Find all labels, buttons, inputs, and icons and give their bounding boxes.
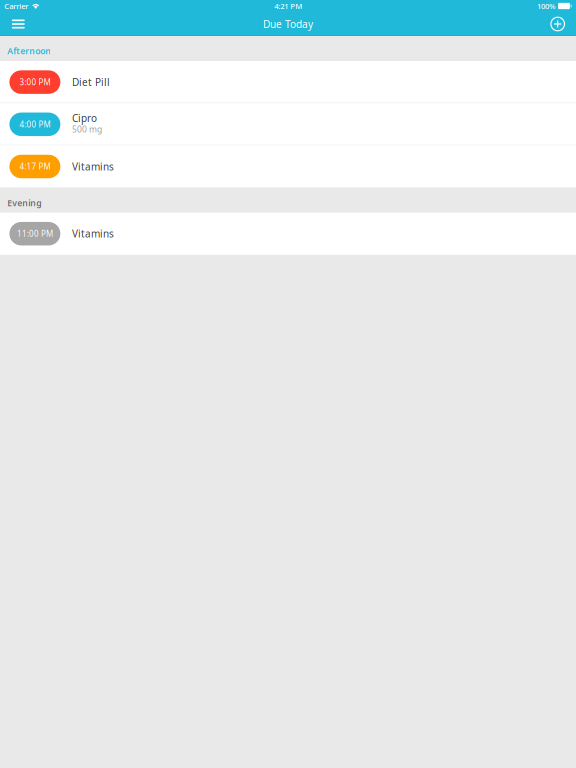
staticText: 11:00 PM (17, 228, 53, 239)
staticText: 3:00 PM (19, 77, 50, 88)
staticText: 4:00 PM (19, 119, 50, 130)
staticText: Evening (7, 197, 41, 209)
staticText: Vitamins (72, 160, 114, 173)
button[interactable]: Menu (3, 12, 33, 36)
button[interactable]: 4:17 PM (0, 145, 576, 188)
button[interactable]: 3:00 PM (0, 61, 576, 103)
staticText: Afternoon (7, 45, 51, 57)
staticText: 4:17 PM (19, 161, 50, 172)
staticText: Vitamins (72, 227, 114, 240)
button[interactable]: Add reminder (543, 12, 573, 36)
staticText: 500 mg (72, 123, 102, 135)
staticText: Carrier (4, 1, 28, 11)
staticText: Diet Pill (72, 75, 110, 89)
staticText: Due Today (263, 17, 313, 31)
staticText: 100% (537, 1, 556, 11)
staticText: 4:21 PM (274, 1, 302, 11)
button[interactable]: 11:00 PM (0, 213, 576, 255)
button[interactable]: 4:00 PM (0, 103, 576, 145)
staticText: Cipro (72, 111, 97, 125)
